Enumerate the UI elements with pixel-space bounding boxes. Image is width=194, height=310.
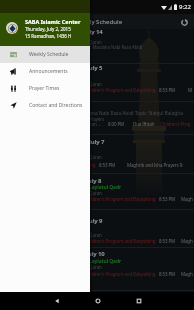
staticText: Children's Program and Babysitting	[85, 87, 156, 93]
staticText: Children's Program and Babysitting	[85, 238, 156, 244]
staticText: Thursday, July 2, 2015	[25, 26, 71, 32]
staticText: Magh	[181, 271, 193, 277]
staticText: Quran	[89, 264, 102, 270]
staticText: Contact and Directions	[29, 102, 83, 109]
button[interactable]: Weekly Schedule	[0, 46, 90, 63]
button[interactable]: Back	[36, 292, 77, 310]
staticText: 8:53 PM	[159, 87, 176, 93]
button[interactable]: Contact and Directions	[0, 97, 90, 114]
staticText: Weekly Schedule	[29, 51, 69, 58]
staticText: Laylatul Qadr	[89, 258, 122, 265]
button[interactable]	[0, 29, 194, 63]
staticText: Children's Program and Babysitting	[85, 196, 156, 202]
staticText: Laylatul Qadr	[89, 184, 122, 191]
staticText: Weekly Schedule	[74, 18, 123, 26]
staticText: Dua Iftitah	[133, 121, 155, 127]
staticText: Quran ...	[84, 121, 102, 127]
staticText: Children's Program and Babysitting	[85, 271, 156, 277]
button[interactable]: Recents	[118, 292, 159, 310]
staticText: Quran	[89, 81, 102, 87]
staticText: Announcements	[29, 68, 68, 75]
button[interactable]	[0, 174, 194, 209]
button[interactable]: Prayer Times	[0, 80, 90, 97]
button[interactable]: Home	[77, 292, 118, 310]
button[interactable]: Refresh	[178, 16, 190, 28]
staticText: 8:00 PM	[108, 121, 125, 127]
staticText: M	[188, 87, 192, 93]
staticText: 9:22	[179, 3, 191, 11]
button[interactable]	[0, 248, 194, 290]
staticText: ing	[89, 162, 96, 168]
staticText: July 9	[87, 217, 103, 225]
staticText: Children's Prog	[160, 121, 191, 127]
staticText: Quran	[89, 39, 102, 45]
staticText: Magh	[181, 238, 193, 244]
staticText: Quran	[89, 154, 102, 160]
staticText: Maulana Nabi Raza Abidi Topic: Nahjul Ba…	[78, 110, 183, 117]
staticText: 8:53 PM	[99, 162, 116, 168]
button[interactable]	[0, 64, 194, 101]
staticText: July 10	[86, 250, 105, 258]
staticText: Speaker: Maulana Nabi Raza Abidi	[74, 44, 143, 50]
staticText: July 8	[86, 177, 102, 185]
staticText: Maghrib and Isha Prayers 9:	[127, 162, 184, 168]
button[interactable]	[0, 102, 194, 134]
staticText: 8:53 PM	[159, 271, 176, 277]
staticText: July 5	[87, 64, 103, 72]
button[interactable]	[0, 135, 194, 173]
staticText: Quran	[89, 190, 102, 196]
staticText: SABA Islamic Center	[25, 18, 81, 25]
staticText: Prayer Times	[29, 85, 60, 92]
staticText: 8:53 PM	[159, 196, 176, 202]
button[interactable]: Announcements	[0, 63, 90, 80]
staticText: Prayers	[89, 116, 105, 122]
staticText: Magh	[181, 196, 193, 202]
staticText: 8:53 PM	[159, 238, 176, 244]
button[interactable]	[0, 210, 194, 247]
staticText: July 14	[84, 28, 103, 36]
staticText: Quran	[89, 232, 102, 238]
staticText: 15 Ramadhan, 1436 H	[25, 33, 72, 39]
staticText: July 7	[89, 138, 105, 146]
